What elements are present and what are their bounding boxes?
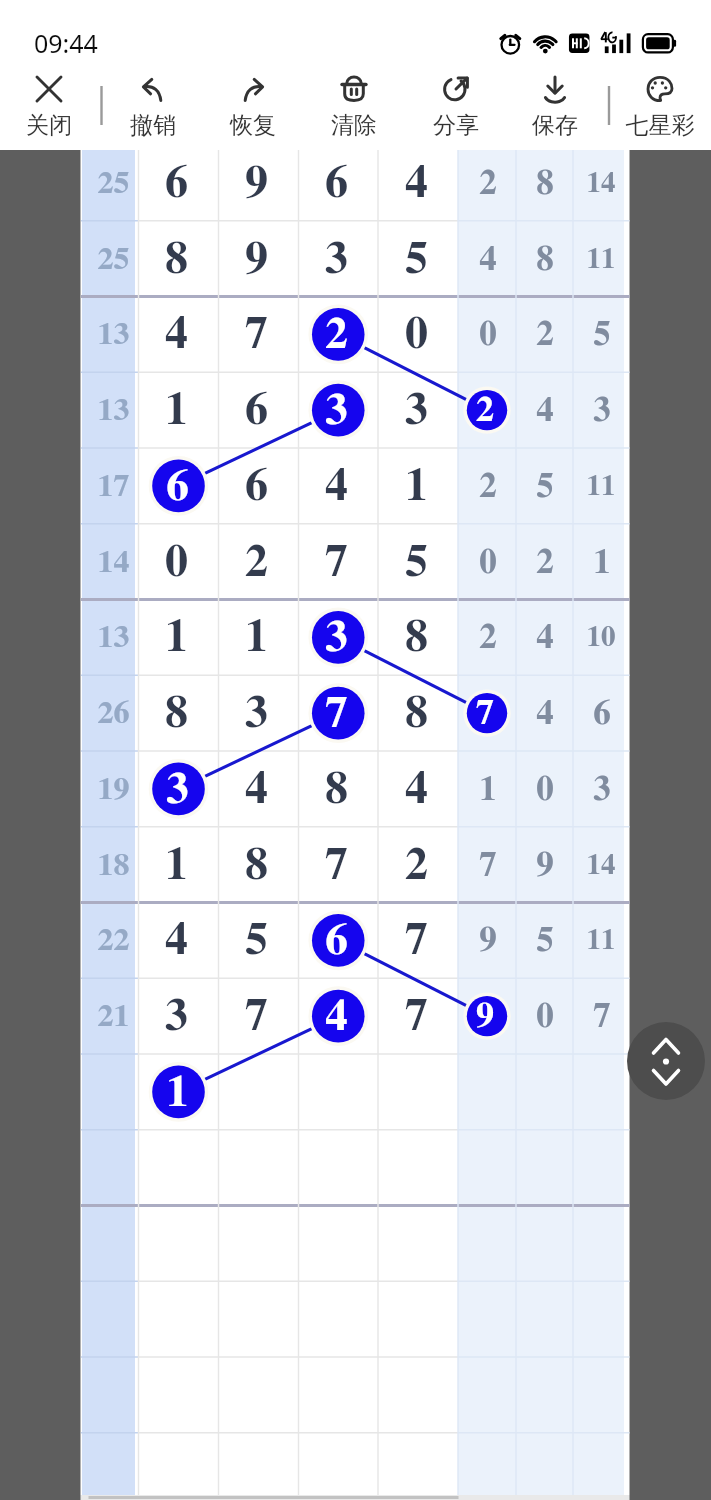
staticText: 7 (405, 993, 428, 1039)
staticText: 14 (586, 851, 616, 880)
staticText: 4 (165, 917, 188, 963)
staticText: 1 (593, 545, 611, 580)
staticText: 3 (593, 772, 611, 807)
staticText: 分享 (408, 111, 504, 140)
staticText: 25 (97, 243, 130, 275)
staticText: 2 (405, 842, 428, 888)
button[interactable]: Scroll up or down (627, 1022, 705, 1100)
staticText: 19 (97, 773, 130, 805)
staticText: 9 (476, 998, 494, 1034)
staticText: 4 (536, 393, 554, 428)
staticText: 4 (405, 766, 428, 812)
button[interactable]: 关闭 (1, 62, 97, 150)
staticText: 2 (245, 539, 268, 585)
button[interactable]: 恢复 (205, 62, 301, 150)
staticText: 4 (245, 766, 268, 812)
button[interactable]: 七星彩 (612, 62, 708, 150)
staticText: 1 (166, 1070, 189, 1115)
staticText: 6 (165, 160, 188, 206)
staticText: 6 (325, 918, 348, 963)
staticText: 7 (405, 917, 428, 963)
staticText: 5 (536, 469, 554, 504)
staticText: 2 (476, 392, 494, 428)
staticText: 6 (325, 160, 348, 206)
staticText: 1 (165, 614, 188, 660)
staticText: 11 (586, 472, 616, 501)
staticText: 清除 (306, 111, 402, 140)
staticText: 18 (97, 849, 130, 881)
staticText: 2 (536, 317, 554, 352)
staticText: 1 (405, 463, 428, 509)
staticText: 3 (325, 615, 348, 660)
staticText: 17 (97, 470, 130, 502)
staticText: 14 (97, 546, 130, 578)
staticText: 5 (405, 539, 428, 585)
staticText: 0 (479, 545, 497, 580)
staticText: 3 (325, 388, 348, 433)
staticText: 0 (165, 539, 188, 585)
staticText: 3 (405, 387, 428, 433)
button[interactable]: 分享 (408, 62, 504, 150)
staticText: 8 (405, 614, 428, 660)
staticText: 9 (479, 923, 497, 958)
staticText: 4 (405, 160, 428, 206)
staticText: 3 (166, 767, 189, 812)
staticText: 1 (245, 614, 268, 660)
staticText: 13 (97, 318, 130, 350)
staticText: 09:44 (34, 26, 98, 60)
staticText: 4 (536, 620, 554, 655)
button[interactable]: 清除 (306, 62, 402, 150)
staticText: 7 (325, 691, 348, 736)
staticText: 26 (97, 697, 130, 729)
staticText: 2 (325, 312, 348, 357)
staticText: 10 (586, 623, 616, 652)
staticText: 1 (165, 842, 188, 888)
staticText: 5 (593, 317, 611, 352)
button[interactable]: 保存 (507, 62, 603, 150)
staticText: 7 (325, 842, 348, 888)
staticText: 2 (479, 620, 497, 655)
staticText: 3 (165, 993, 188, 1039)
staticText: 13 (97, 394, 130, 426)
staticText: 关闭 (1, 111, 97, 140)
staticText: 1 (479, 772, 497, 807)
staticText: 6 (245, 387, 268, 433)
staticText: 9 (536, 848, 554, 883)
button[interactable]: 撤销 (105, 62, 201, 150)
staticText: 11 (586, 926, 616, 955)
staticText: 14 (586, 169, 616, 198)
staticText: 7 (593, 999, 611, 1034)
staticText: 1 (165, 387, 188, 433)
staticText: 8 (536, 242, 554, 277)
staticText: 撤销 (105, 111, 201, 140)
staticText: 25 (97, 167, 130, 199)
staticText: 8 (165, 690, 188, 736)
staticText: 8 (165, 236, 188, 282)
staticText: 3 (593, 393, 611, 428)
staticText: 5 (536, 923, 554, 958)
staticText: 7 (245, 311, 268, 357)
staticText: 2 (479, 469, 497, 504)
staticText: 7 (245, 993, 268, 1039)
staticText: 13 (97, 621, 130, 653)
staticText: 恢复 (205, 111, 301, 140)
staticText: 22 (97, 924, 130, 956)
staticText: 8 (405, 690, 428, 736)
staticText: 3 (245, 690, 268, 736)
staticText: 0 (536, 772, 554, 807)
staticText: 21 (97, 1000, 130, 1032)
staticText: 9 (245, 160, 268, 206)
staticText: 9 (245, 236, 268, 282)
staticText: 4 (325, 994, 348, 1039)
staticText: 7 (479, 848, 497, 883)
staticText: 0 (479, 317, 497, 352)
staticText: 7 (476, 695, 494, 731)
staticText: 11 (586, 245, 616, 274)
staticText: 4 (165, 311, 188, 357)
staticText: 7 (325, 539, 348, 585)
staticText: 2 (479, 166, 497, 201)
staticText: 8 (325, 766, 348, 812)
staticText: 2 (536, 545, 554, 580)
staticText: 3 (325, 236, 348, 282)
staticText: 4 (536, 696, 554, 731)
